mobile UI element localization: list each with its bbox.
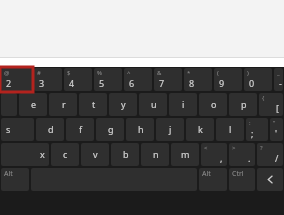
button[interactable]: o [199,93,227,116]
button[interactable]: l [216,118,244,141]
button[interactable]: 2 [1,68,32,91]
button[interactable]: 8 [184,68,212,91]
button[interactable]: 7 [154,68,182,91]
staticText: 0 [249,77,255,89]
staticText: 7 [159,77,165,89]
button[interactable]: minus [274,68,283,91]
button[interactable]: j [156,118,184,141]
staticText: # [37,69,41,77]
button[interactable]: d [36,118,64,141]
button[interactable]: comma [201,143,227,166]
button[interactable]: 9 [214,68,242,91]
button[interactable]: 0 [244,68,272,91]
button[interactable]: Alt [199,168,227,191]
staticText: / [275,152,279,164]
button[interactable]: w [1,93,17,116]
button[interactable]: f [66,118,94,141]
button[interactable]: b [111,143,139,166]
staticText: n [153,148,159,160]
button[interactable]: k [186,118,214,141]
button[interactable]: 6 [124,68,152,91]
button[interactable]: y [109,93,137,116]
staticText: d [48,123,54,135]
staticText: > [232,144,236,152]
staticText: : [249,119,251,127]
staticText: l [229,123,232,135]
button[interactable]: Left arrow [257,168,283,191]
staticText: 8 [189,77,195,89]
staticText: j [169,123,172,135]
staticText: k [198,123,203,135]
staticText: Alt [202,169,211,179]
staticText: * [187,69,191,77]
staticText: . [248,152,251,164]
staticText: y [121,98,126,110]
staticText: e [31,98,37,110]
button[interactable]: Alt [1,168,29,191]
staticText: 5 [99,77,105,89]
staticText: & [157,69,162,77]
staticText: g [108,123,114,135]
button[interactable]: x [1,143,49,166]
button[interactable]: r [49,93,77,116]
staticText: m [181,148,190,160]
button[interactable]: i [169,93,197,116]
staticText: ( [217,69,219,77]
staticText: o [211,98,217,110]
button[interactable]: Control [229,168,255,191]
button[interactable]: e [19,93,47,116]
button[interactable]: semicolon [246,118,268,141]
staticText: , [220,152,223,164]
staticText: " [273,119,276,127]
button[interactable]: s [1,118,34,141]
button[interactable]: u [139,93,167,116]
staticText: 4 [69,77,75,89]
staticText: Alt [4,169,13,179]
button[interactable]: quote [270,118,283,141]
staticText: [ [276,102,279,114]
staticText: ; [251,127,254,139]
staticText: ? [260,144,263,152]
staticText: ) [247,69,249,77]
button[interactable]: m [171,143,199,166]
staticText: b [123,148,129,160]
staticText: t [92,98,96,110]
staticText: { [262,94,265,102]
staticText: $ [67,69,71,77]
staticText: % [97,69,102,77]
staticText: 2 [6,77,12,89]
staticText: @ [4,69,10,77]
staticText: s [6,123,11,135]
staticText: Ctrl [232,169,244,179]
staticText: r [62,98,66,110]
button[interactable]: slash [257,143,283,166]
button[interactable]: 3 [34,68,62,91]
staticText: ' [275,127,278,139]
button[interactable]: c [51,143,79,166]
staticText: h [138,123,144,135]
button[interactable]: 5 [94,68,122,91]
staticText: c [63,148,68,160]
staticText: v [93,148,98,160]
button[interactable]: h [126,118,154,141]
staticText: u [151,98,157,110]
staticText: 6 [129,77,135,89]
staticText: 3 [39,77,45,89]
button[interactable]: 4 [64,68,92,91]
staticText: p [241,98,247,110]
staticText: x [40,148,45,160]
staticText: i [182,98,185,110]
button[interactable]: bracket [259,93,283,116]
staticText: f [79,123,83,135]
staticText: < [204,144,208,152]
staticText: 9 [219,77,225,89]
staticText: _ [277,69,280,77]
button[interactable]: p [229,93,257,116]
button[interactable]: g [96,118,124,141]
button[interactable]: n [141,143,169,166]
button[interactable]: period [229,143,255,166]
button[interactable]: t [79,93,107,116]
staticText: ^ [127,69,131,77]
button[interactable]: v [81,143,109,166]
